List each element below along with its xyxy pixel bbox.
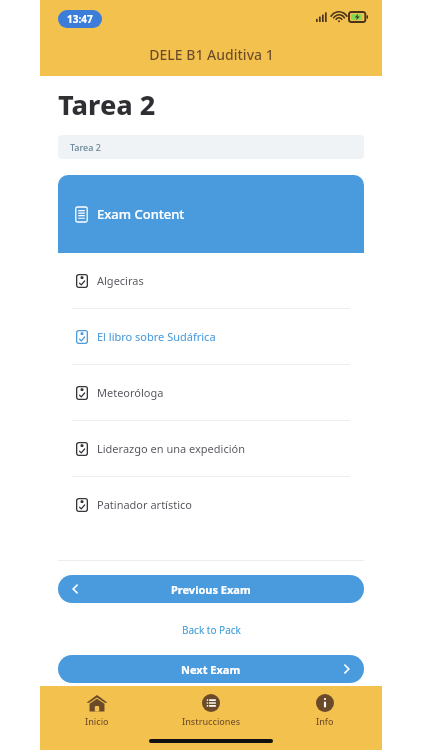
staticText: Tarea 2 [58,86,156,123]
staticText: Back to Pack [182,623,241,637]
button[interactable]: Inicio [40,692,154,729]
button[interactable]: Exam Content [58,175,364,253]
staticText: Tarea 2 [70,141,101,153]
button[interactable]: Instrucciones [154,692,268,729]
staticText: Exam Content [97,205,185,223]
staticText: Instrucciones [182,715,241,727]
staticText: 13:47 [67,12,93,26]
staticText: El libro sobre Sudáfrica [97,329,216,344]
button[interactable]: El libro sobre Sudáfrica [58,309,364,364]
staticText: Next Exam [181,662,241,677]
button[interactable]: Info [268,692,382,729]
staticText: Patinador artístico [97,497,192,512]
staticText: Info [316,715,334,727]
staticText: Meteoróloga [97,385,164,400]
button[interactable]: Meteoróloga [58,365,364,420]
button[interactable]: Liderazgo en una expedición [58,421,364,476]
button[interactable]: Patinador artístico [58,477,364,532]
staticText: DELE B1 Auditiva 1 [149,45,274,64]
button[interactable]: Next Exam [58,655,364,683]
button[interactable]: Tarea 2 [58,135,364,159]
staticText: Previous Exam [171,582,251,597]
staticText: Liderazgo en una expedición [97,441,245,456]
staticText: Inicio [85,715,109,727]
staticText: Algeciras [97,273,144,288]
button[interactable]: Previous Exam [58,575,364,603]
button[interactable]: Back to Pack [174,621,249,639]
button[interactable]: Algeciras [58,253,364,308]
